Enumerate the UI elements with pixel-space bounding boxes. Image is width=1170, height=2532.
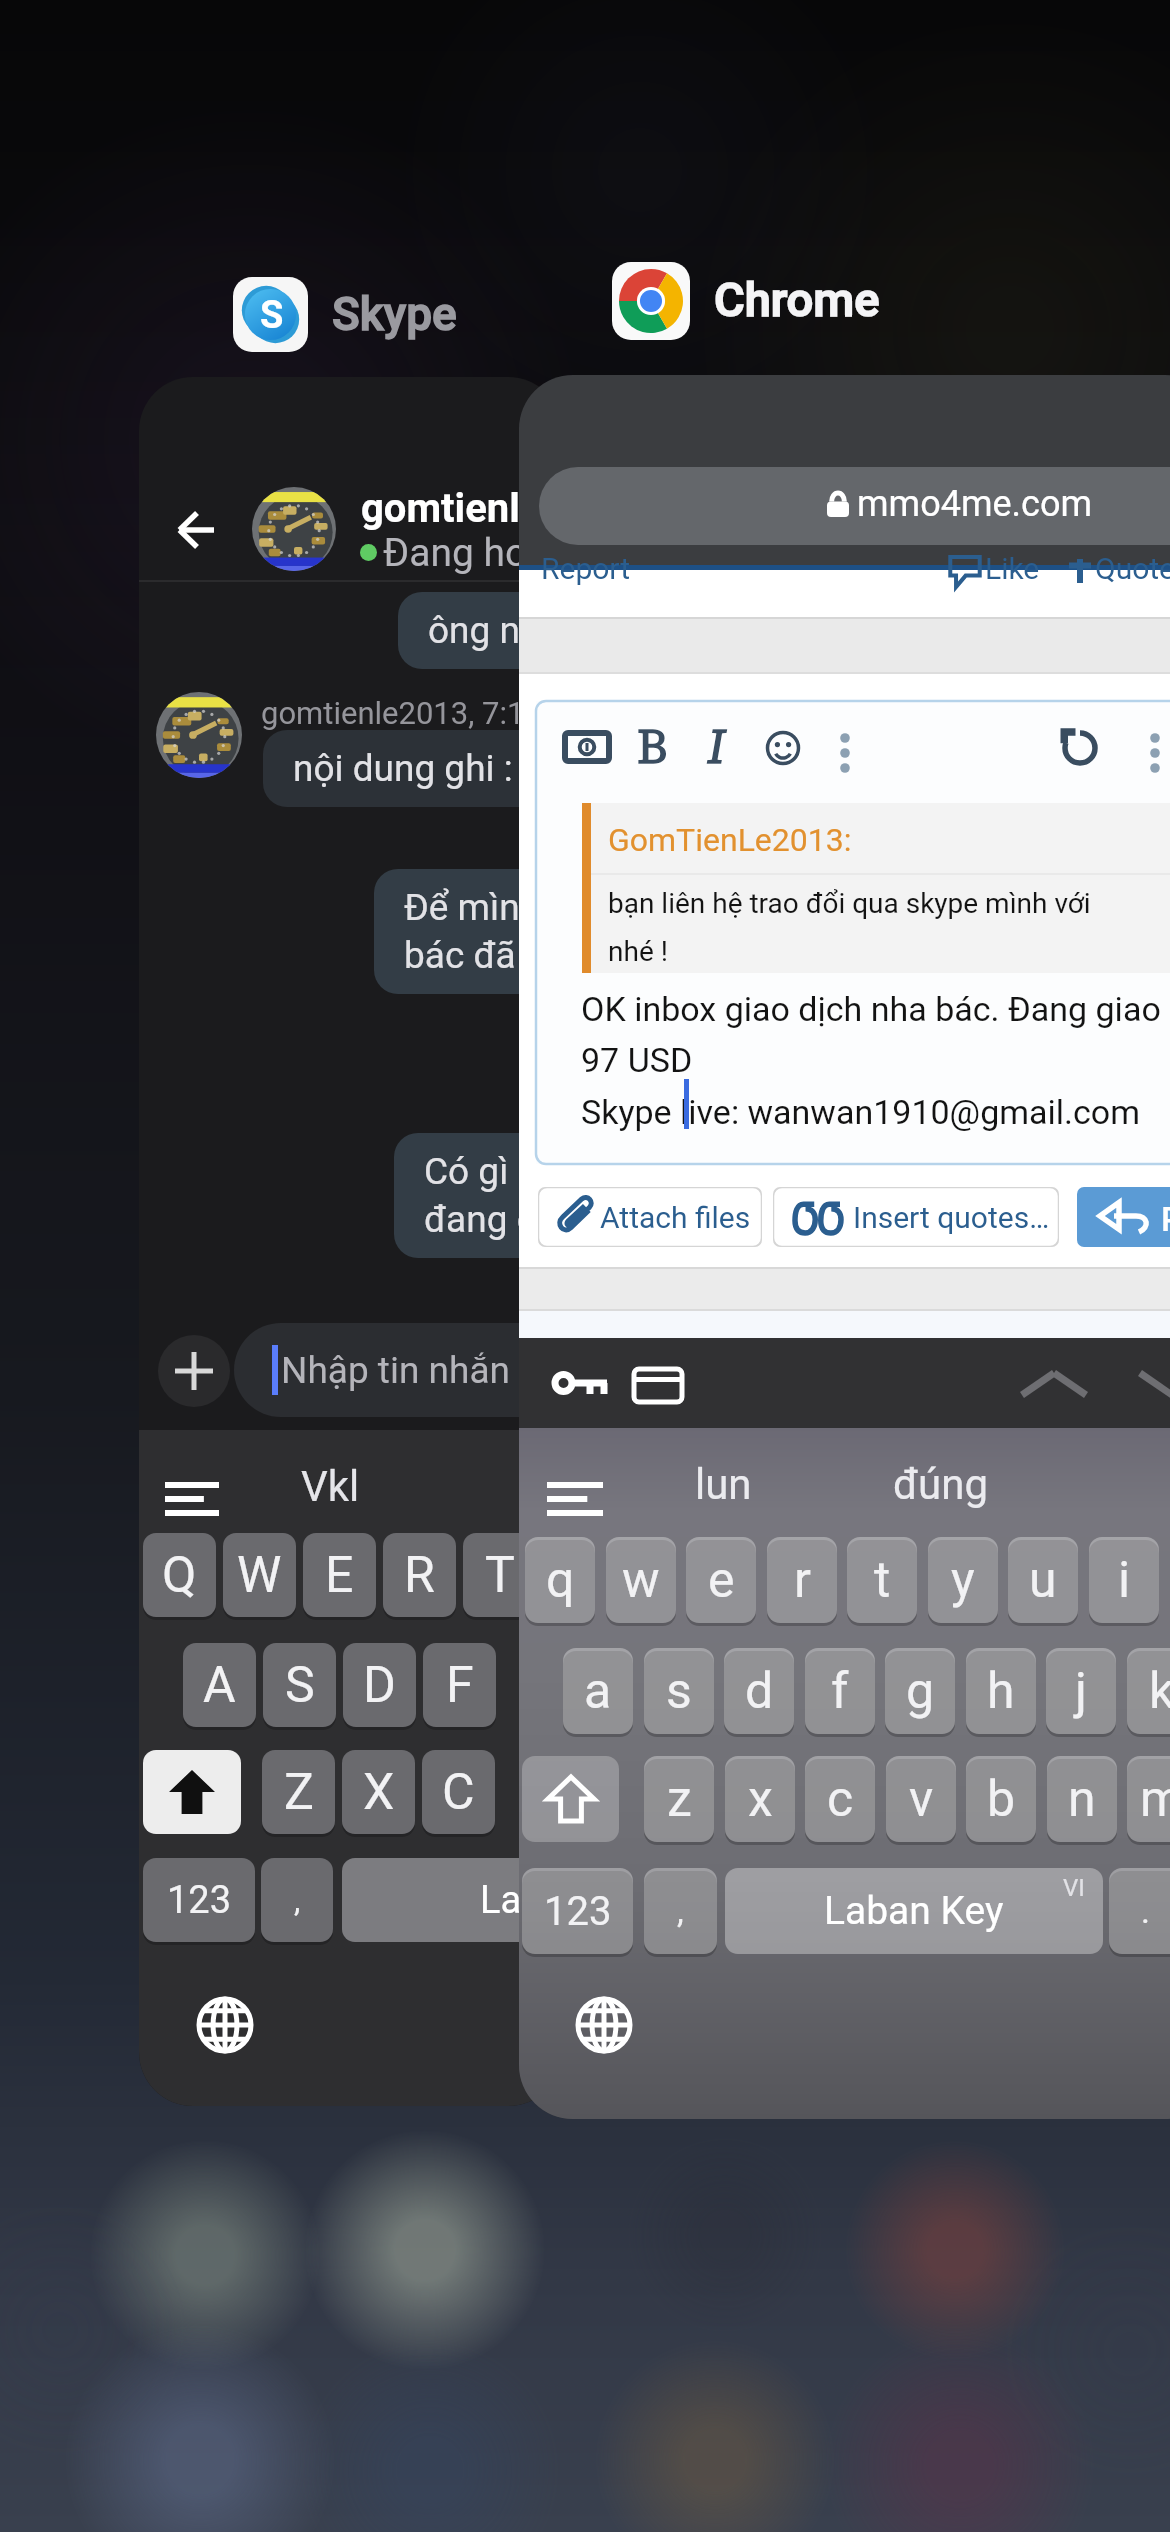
staticText: mmo4me.com bbox=[857, 483, 1093, 525]
button[interactable]: s bbox=[644, 1648, 714, 1734]
button[interactable]: Nhập tin nhắn bbox=[234, 1323, 562, 1417]
staticText: f bbox=[831, 1662, 849, 1721]
staticText: GomTienLe2013: bbox=[608, 821, 852, 859]
button[interactable]: Back bbox=[139, 377, 562, 2106]
button[interactable]: a bbox=[563, 1648, 633, 1734]
button[interactable]: m bbox=[1127, 1756, 1170, 1842]
staticText: g bbox=[906, 1662, 935, 1721]
button[interactable]: q bbox=[525, 1537, 595, 1623]
button[interactable]: Shift bbox=[143, 1750, 241, 1834]
button[interactable]: z bbox=[644, 1756, 714, 1842]
button[interactable]: Chrome bbox=[612, 262, 690, 340]
button[interactable]: v bbox=[886, 1756, 956, 1842]
button[interactable]: w bbox=[606, 1537, 676, 1623]
button[interactable]: n bbox=[1047, 1756, 1117, 1842]
button[interactable]: j bbox=[1046, 1648, 1116, 1734]
button[interactable]: R bbox=[383, 1533, 456, 1617]
button[interactable]: Skype bbox=[233, 277, 308, 352]
staticText: Chrome bbox=[714, 272, 880, 327]
button[interactable]: u bbox=[1008, 1537, 1078, 1623]
button[interactable]: E bbox=[303, 1533, 376, 1617]
button[interactable]: F bbox=[423, 1643, 496, 1727]
staticText: 123 bbox=[167, 1878, 232, 1923]
button[interactable]: e bbox=[686, 1537, 756, 1623]
staticText: nội dung ghi : ca bbox=[293, 747, 562, 790]
staticText: s bbox=[666, 1662, 692, 1721]
staticText: Để mình bác đã bbox=[404, 886, 541, 977]
button[interactable]: b bbox=[966, 1756, 1036, 1842]
staticText: y bbox=[951, 1551, 975, 1610]
button[interactable]: , bbox=[644, 1868, 717, 1954]
staticText: Vkl bbox=[301, 1462, 360, 1511]
staticText: , bbox=[677, 1891, 684, 1931]
staticText: D bbox=[363, 1656, 396, 1715]
button[interactable]: , bbox=[261, 1858, 333, 1942]
staticText: j bbox=[1075, 1662, 1087, 1721]
button[interactable]: Shift bbox=[522, 1756, 619, 1842]
button[interactable]: f bbox=[805, 1648, 875, 1734]
button[interactable]: Laban Key bbox=[725, 1868, 1103, 1954]
button[interactable]: S bbox=[263, 1643, 336, 1727]
staticText: Nhập tin nhắn bbox=[281, 1349, 510, 1392]
button[interactable]: Laba bbox=[342, 1858, 562, 1942]
button[interactable]: c bbox=[805, 1756, 875, 1842]
staticText: C bbox=[442, 1763, 475, 1822]
button[interactable]: d bbox=[724, 1648, 794, 1734]
button[interactable]: 123 bbox=[522, 1868, 633, 1954]
staticText: Insert quotes… bbox=[853, 1200, 1050, 1235]
button[interactable]: Insert quotes… bbox=[773, 1187, 1059, 1247]
staticText: P bbox=[1161, 1199, 1170, 1239]
staticText: x bbox=[748, 1770, 773, 1829]
button[interactable]: C bbox=[422, 1750, 495, 1834]
button[interactable]: X bbox=[342, 1750, 415, 1834]
staticText: Skype bbox=[332, 287, 457, 341]
button[interactable]: W bbox=[223, 1533, 296, 1617]
staticText: B bbox=[637, 720, 668, 774]
staticText: F bbox=[446, 1656, 474, 1715]
button[interactable]: . bbox=[1109, 1868, 1170, 1954]
button[interactable]: D bbox=[343, 1643, 416, 1727]
button[interactable]: Change language bbox=[196, 1996, 254, 2054]
button[interactable]: Attach files bbox=[538, 1187, 762, 1247]
button[interactable]: t bbox=[847, 1537, 917, 1623]
button[interactable]: mmo4me.com bbox=[519, 375, 1170, 2119]
button[interactable]: 123 bbox=[143, 1858, 255, 1942]
button[interactable]: Add attachment bbox=[158, 1335, 230, 1407]
button[interactable]: k bbox=[1127, 1648, 1170, 1734]
staticText: OK inbox giao dịch nha bác. Đang giao 97… bbox=[581, 989, 1161, 1132]
staticText: u bbox=[1029, 1551, 1057, 1610]
staticText: E bbox=[325, 1546, 354, 1605]
button[interactable]: P bbox=[1077, 1187, 1170, 1247]
staticText: Z bbox=[284, 1763, 314, 1822]
staticText: , bbox=[294, 1881, 301, 1919]
staticText: Like bbox=[985, 551, 1040, 586]
staticText: A bbox=[203, 1656, 236, 1715]
staticText: Attach files bbox=[600, 1200, 751, 1235]
button[interactable]: y bbox=[928, 1537, 998, 1623]
staticText: VI bbox=[1063, 1874, 1085, 1902]
staticText: lun bbox=[695, 1460, 752, 1509]
staticText: Quote bbox=[1095, 551, 1170, 586]
button[interactable]: mmo4me.com bbox=[539, 467, 1170, 545]
button[interactable]: i bbox=[1089, 1537, 1159, 1623]
staticText: v bbox=[909, 1770, 934, 1829]
staticText: i bbox=[1118, 1551, 1131, 1610]
staticText: X bbox=[363, 1763, 395, 1822]
button[interactable]: Change language bbox=[575, 1996, 633, 2054]
button[interactable]: h bbox=[966, 1648, 1036, 1734]
button[interactable]: g bbox=[885, 1648, 955, 1734]
button[interactable]: T bbox=[463, 1533, 536, 1617]
staticText: R bbox=[404, 1546, 435, 1605]
button[interactable]: Back bbox=[159, 494, 233, 564]
button[interactable]: A bbox=[183, 1643, 256, 1727]
staticText: 123 bbox=[544, 1888, 612, 1935]
button[interactable]: x bbox=[725, 1756, 795, 1842]
button[interactable]: Q bbox=[143, 1533, 216, 1617]
staticText: a bbox=[584, 1662, 612, 1721]
button[interactable]: r bbox=[767, 1537, 837, 1623]
staticText: z bbox=[667, 1770, 692, 1829]
staticText: t bbox=[874, 1551, 891, 1610]
button[interactable]: Z bbox=[262, 1750, 335, 1834]
staticText: S bbox=[285, 1656, 315, 1715]
staticText: h bbox=[987, 1662, 1015, 1721]
